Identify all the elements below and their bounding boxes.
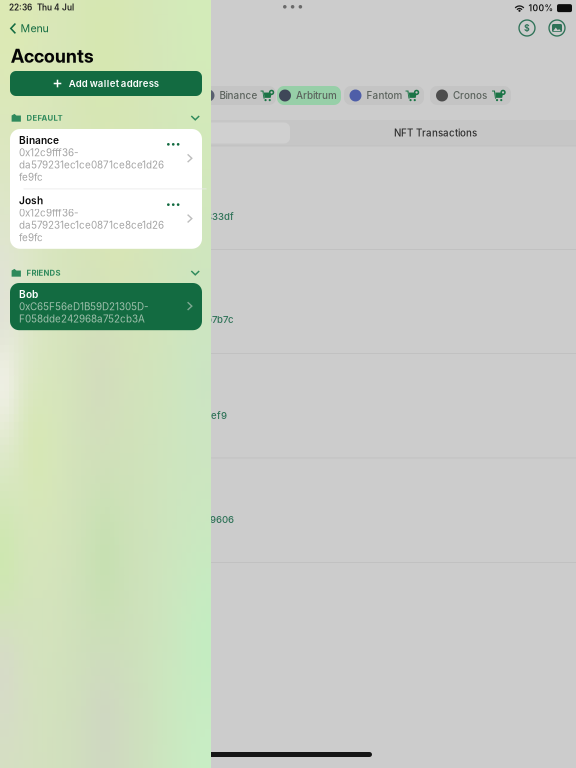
staticText: Accounts bbox=[11, 45, 94, 67]
staticText: 0x65c1eca8e2d8d76d757d201469069bdc833df bbox=[12, 211, 234, 222]
button[interactable]: FRIENDS bbox=[0, 266, 211, 280]
staticText: da579231ec1ce0871ce8ce1d26 bbox=[19, 219, 164, 231]
staticText: da579231ec1ce0871ce8ce1d26 bbox=[19, 159, 164, 171]
staticText: Binance bbox=[19, 134, 59, 146]
staticText: DEFAULT bbox=[26, 113, 62, 123]
staticText: Cronos bbox=[453, 89, 487, 101]
staticText: 0xee5f6781dcce7b515bbc980494bfc689e9606 bbox=[12, 514, 234, 525]
button[interactable]: Bob bbox=[10, 283, 202, 330]
staticText: 000000000000000 bbox=[12, 399, 102, 410]
button[interactable]: Cronos bbox=[430, 86, 511, 105]
staticText: fe9fc bbox=[19, 171, 43, 183]
button[interactable]: Photos bbox=[548, 19, 566, 37]
button[interactable]: Binance bbox=[200, 86, 276, 105]
staticText: 22:36 bbox=[9, 2, 32, 12]
button[interactable]: DEFAULT bbox=[0, 111, 211, 125]
button[interactable]: Arbitrum bbox=[277, 86, 341, 105]
staticText: 0xd5fba0c550d3ab0bdbaf7c28c44aa6e5def9 bbox=[12, 410, 227, 421]
staticText: Josh bbox=[19, 194, 43, 207]
button[interactable]: Binance bbox=[10, 129, 202, 188]
button[interactable]: Fantom bbox=[344, 86, 424, 105]
staticText: Bob bbox=[19, 288, 38, 300]
staticText: Thu 4 Jul bbox=[37, 2, 74, 12]
button[interactable]: Prices bbox=[518, 19, 536, 37]
button[interactable]: 0x7fdd6662afbca800d55b8eebc480cb0ab7b7c bbox=[0, 314, 576, 325]
staticText: Arbitrum bbox=[296, 89, 337, 101]
staticText: Add wallet address bbox=[69, 78, 159, 89]
staticText: 0x7fdd6662afbca800d55b8eebc480cb0ab7b7c bbox=[12, 314, 234, 325]
staticText: 0xC65F56eD1B59D21305D- bbox=[19, 301, 149, 313]
staticText: FRIENDS bbox=[26, 268, 60, 278]
staticText: Fantom bbox=[366, 89, 402, 101]
staticText: Binance bbox=[219, 89, 257, 101]
staticText: 100% bbox=[528, 3, 553, 13]
button[interactable]: Menu bbox=[0, 18, 58, 39]
button[interactable]: 0xcd20a4fd2d bbox=[0, 503, 576, 525]
staticText: S bbox=[524, 23, 530, 33]
staticText: 0x12c9fff36- bbox=[19, 207, 79, 219]
button[interactable]: 0x65c1eca8e2d8d76d757d201469069bdc833df bbox=[0, 211, 576, 222]
button[interactable]: 000000000000000 bbox=[0, 399, 576, 421]
staticText: F058dde242968a752cb3A bbox=[19, 313, 145, 325]
staticText: 0x12c9fff36- bbox=[19, 147, 79, 159]
button[interactable]: Josh bbox=[10, 189, 202, 249]
staticText: NFT Transactions bbox=[394, 127, 477, 139]
staticText: fe9fc bbox=[19, 232, 43, 243]
staticText: Menu bbox=[20, 22, 48, 35]
button[interactable]: Add wallet address bbox=[10, 71, 202, 96]
